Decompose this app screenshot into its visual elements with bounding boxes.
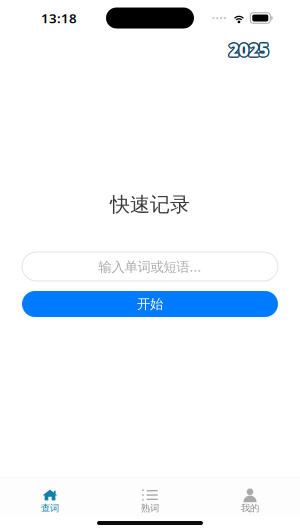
- staticText: 2025: [229, 39, 269, 62]
- staticText: 2025: [229, 39, 269, 62]
- staticText: 2025: [229, 37, 269, 60]
- staticText: 2025: [229, 37, 269, 60]
- staticText: 2025: [228, 37, 268, 60]
- staticText: 2025: [229, 38, 269, 61]
- staticText: 2025: [230, 39, 270, 62]
- staticText: 2025: [228, 38, 268, 61]
- staticText: 2025: [230, 37, 270, 60]
- button[interactable]: 熟词: [100, 477, 200, 517]
- button[interactable]: 查词: [0, 477, 100, 517]
- staticText: 2025: [230, 38, 270, 61]
- staticText: 查词: [41, 502, 59, 514]
- staticText: 2025: [228, 39, 268, 62]
- staticText: 2025: [229, 39, 269, 62]
- staticText: 2025: [229, 38, 269, 61]
- staticText: 开始: [137, 296, 163, 312]
- staticText: 熟词: [141, 502, 159, 514]
- staticText: 快速记录: [110, 192, 190, 217]
- button[interactable]: 我的: [200, 477, 300, 517]
- staticText: 2025: [229, 38, 269, 61]
- staticText: 我的: [241, 502, 259, 514]
- staticText: 2025: [228, 38, 268, 61]
- staticText: 13:18: [41, 9, 77, 27]
- staticText: 2025: [228, 38, 268, 61]
- staticText: 2025: [228, 39, 268, 62]
- staticText: 输入单词或短语...: [98, 258, 201, 275]
- button[interactable]: 开始: [0, 291, 300, 317]
